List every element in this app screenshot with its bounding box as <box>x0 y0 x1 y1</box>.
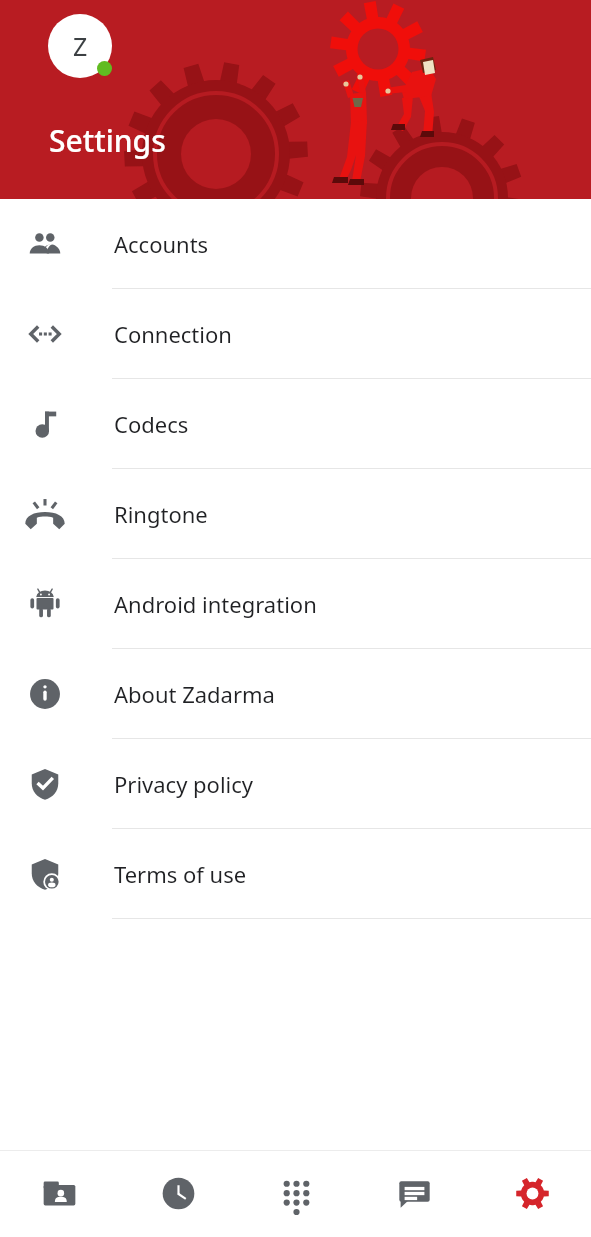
staticText: Codecs <box>114 409 189 439</box>
staticText: Settings <box>49 120 166 161</box>
button[interactable]: Contacts <box>0 1150 119 1237</box>
button[interactable]: Settings <box>473 1150 591 1237</box>
button[interactable]: Codecs <box>0 379 591 469</box>
button[interactable]: Terms of use <box>0 829 591 919</box>
button[interactable]: Accounts <box>0 199 591 289</box>
button[interactable]: Messages <box>355 1150 473 1237</box>
button[interactable]: Recents <box>119 1150 237 1237</box>
button[interactable]: About Zadarma <box>0 649 591 739</box>
button[interactable]: Dialpad <box>237 1150 355 1237</box>
button[interactable]: Android integration <box>0 559 591 649</box>
button[interactable]: Privacy policy <box>0 739 591 829</box>
staticText: Z <box>73 29 88 63</box>
staticText: Privacy policy <box>114 769 254 799</box>
button[interactable]: Connection <box>0 289 591 379</box>
staticText: Terms of use <box>114 859 247 889</box>
staticText: Accounts <box>114 229 209 259</box>
staticText: Ringtone <box>114 499 208 529</box>
staticText: About Zadarma <box>114 679 275 709</box>
staticText: Android integration <box>114 589 317 619</box>
button[interactable]: Ringtone <box>0 469 591 559</box>
staticText: Connection <box>114 319 232 349</box>
